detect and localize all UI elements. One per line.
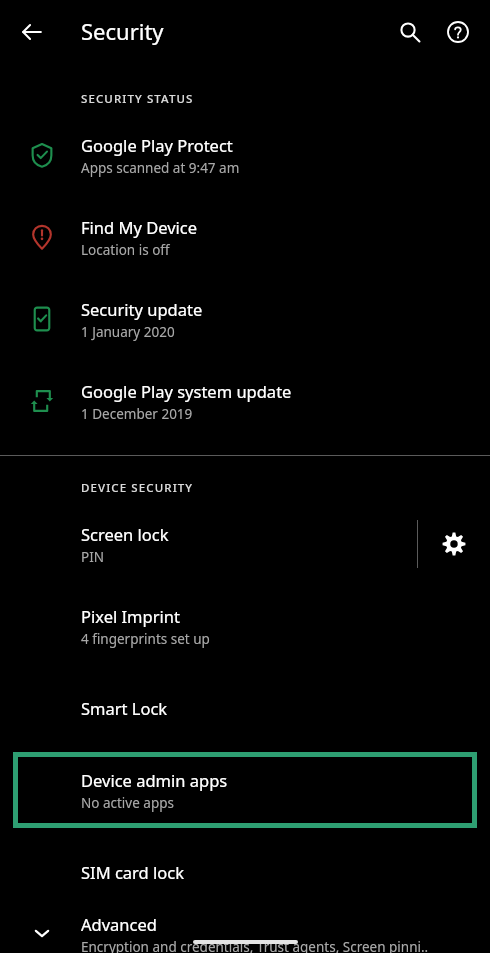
staticText: Screen lock (81, 523, 169, 545)
button[interactable]: Screen lock settings (418, 503, 490, 585)
button[interactable]: Google Play system update (0, 360, 490, 442)
button[interactable]: Screen lock (0, 503, 417, 585)
button[interactable]: Google Play Protect (0, 114, 490, 196)
button[interactable]: Security update (0, 278, 490, 360)
staticText: 1 January 2020 (81, 323, 175, 341)
button[interactable]: SIM card lock (0, 831, 490, 913)
staticText: Advanced (81, 913, 157, 935)
button[interactable]: Back (8, 8, 56, 56)
staticText: Apps scanned at 9:47 am (81, 159, 240, 177)
staticText: SIM card lock (81, 861, 184, 883)
staticText: Find My Device (81, 216, 198, 238)
staticText: 1 December 2019 (81, 405, 193, 423)
staticText: Google Play system update (81, 380, 292, 402)
staticText: Google Play Protect (81, 134, 233, 156)
button[interactable]: Find My Device (0, 196, 490, 278)
button[interactable]: Device admin apps (13, 752, 477, 828)
staticText: Security (81, 16, 164, 46)
staticText: Security update (81, 298, 203, 320)
staticText: Smart Lock (81, 697, 168, 719)
staticText: SECURITY STATUS (81, 91, 194, 107)
button[interactable]: Advanced (0, 913, 490, 953)
staticText: Pixel Imprint (81, 605, 180, 627)
button[interactable]: Pixel Imprint (0, 585, 490, 667)
button[interactable]: Help (434, 8, 482, 56)
staticText: Location is off (81, 241, 170, 259)
staticText: No active apps (81, 794, 174, 812)
staticText: DEVICE SECURITY (81, 480, 194, 496)
staticText: Device admin apps (81, 769, 228, 791)
button[interactable]: Search (386, 8, 434, 56)
staticText: 4 fingerprints set up (81, 630, 210, 648)
button[interactable]: Smart Lock (0, 667, 490, 749)
staticText: PIN (81, 548, 105, 566)
staticText: Encryption and credentials, Trust agents… (81, 938, 429, 953)
